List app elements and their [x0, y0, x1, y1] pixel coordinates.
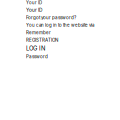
staticText: Forgot your password? — [26, 15, 76, 20]
staticText: Remember — [26, 30, 51, 35]
staticText: Password — [26, 54, 48, 59]
staticText: Your ID — [26, 0, 42, 5]
staticText: You can log in to the website via — [26, 22, 94, 28]
staticText: REGISTRATION — [26, 37, 58, 43]
staticText: LOG IN — [26, 45, 45, 52]
staticText: Your ID — [26, 7, 42, 13]
